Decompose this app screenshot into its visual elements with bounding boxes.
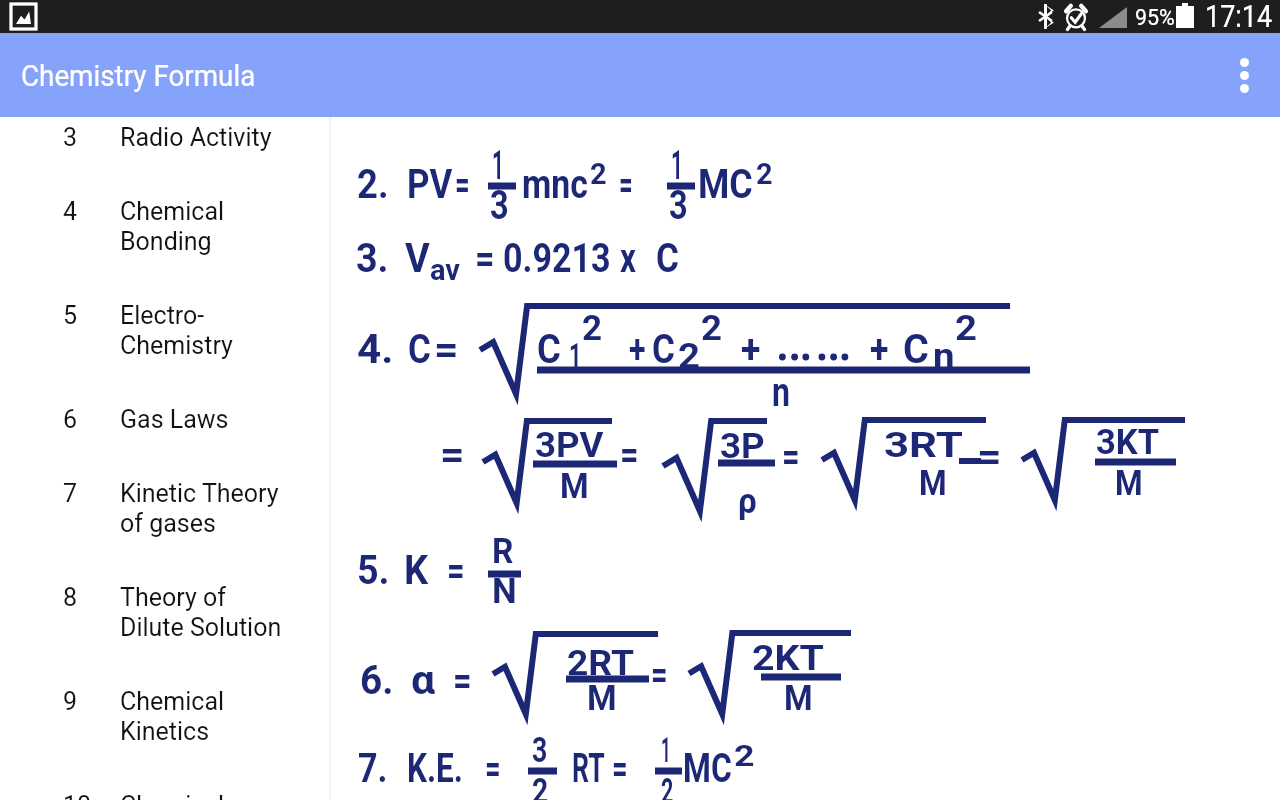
staticText: 5: [63, 301, 78, 330]
button[interactable]: 7: [0, 456, 329, 560]
button[interactable]: 5: [0, 278, 329, 382]
staticText: 7: [63, 479, 78, 508]
button[interactable]: 6: [0, 382, 329, 456]
staticText: 3: [63, 123, 78, 152]
staticText: 6: [63, 405, 78, 434]
staticText: 8: [63, 583, 78, 612]
button[interactable]: 9: [0, 664, 329, 768]
staticText: 4: [63, 197, 78, 226]
staticText: 10: [63, 791, 92, 800]
staticText: Radio Activity: [120, 123, 305, 152]
button[interactable]: More options: [1208, 39, 1280, 111]
button[interactable]: 4: [0, 174, 329, 278]
staticText: Chemical Equilibrium: [120, 791, 305, 800]
staticText: Kinetic Theory of gases: [120, 479, 305, 538]
staticText: 9: [63, 687, 78, 716]
staticText: Electro- Chemistry: [120, 301, 305, 360]
button[interactable]: 10: [0, 768, 329, 800]
staticText: Chemical Kinetics: [120, 687, 305, 746]
staticText: Theory of Dilute Solution: [120, 583, 305, 642]
staticText: Gas Laws: [120, 405, 305, 434]
staticText: Chemical Bonding: [120, 197, 305, 256]
button[interactable]: 8: [0, 560, 329, 664]
button[interactable]: 3: [0, 117, 329, 174]
